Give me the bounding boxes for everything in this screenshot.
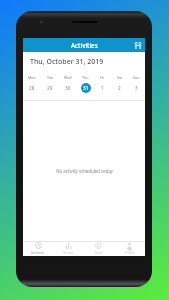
button[interactable]: 3 [128, 85, 145, 91]
staticText: 29 [47, 85, 53, 91]
staticText: Activities [31, 251, 45, 254]
staticText: Sun [133, 75, 140, 80]
staticText: Activities [71, 41, 98, 49]
button[interactable]: Activities [23, 241, 53, 254]
staticText: Thu, October 31, 2019 [30, 57, 104, 67]
button[interactable]: 2 [111, 85, 128, 91]
button[interactable]: 30 [59, 85, 77, 91]
staticText: 1 [101, 85, 104, 91]
button[interactable]: 29 [41, 85, 59, 91]
staticText: Fri [100, 75, 105, 80]
staticText: Thu [82, 75, 89, 80]
button[interactable]: Report [53, 241, 83, 254]
staticText: 28 [29, 85, 35, 91]
button[interactable]: 1 [94, 85, 111, 91]
staticText: Wed [64, 75, 72, 80]
button[interactable]: 28 [23, 85, 41, 91]
button[interactable]: Profile [114, 241, 145, 254]
staticText: 2 [118, 85, 121, 91]
staticText: Report [63, 251, 74, 254]
staticText: Profile [125, 251, 135, 254]
staticText: Mon [28, 75, 36, 80]
button[interactable]: Group members [132, 40, 143, 51]
staticText: No activity scheduled today [56, 168, 113, 174]
button[interactable]: 31 [77, 83, 94, 93]
staticText: 30 [65, 85, 71, 91]
button[interactable]: Goal [83, 241, 114, 254]
staticText: 31 [83, 85, 89, 91]
staticText: 3 [135, 85, 138, 91]
staticText: Sat [117, 75, 123, 80]
staticText: Goal [95, 251, 102, 254]
staticText: Tue [47, 75, 54, 80]
